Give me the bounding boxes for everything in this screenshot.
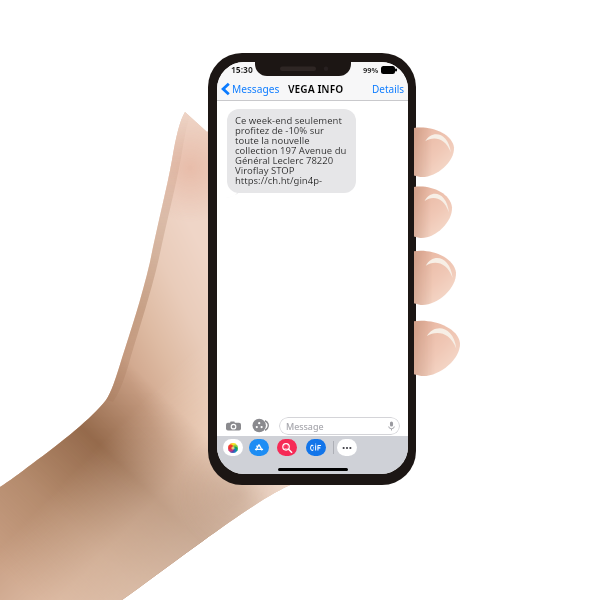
button[interactable]: Take photo	[225, 419, 241, 433]
staticText: 15:30	[231, 64, 253, 76]
button[interactable]: Messages	[217, 82, 282, 96]
staticText: 99%	[363, 65, 379, 75]
button[interactable]: iMessage apps	[252, 419, 268, 432]
staticText: Message	[286, 420, 324, 432]
button[interactable]: App Store	[249, 439, 269, 456]
button[interactable]: Message	[279, 417, 400, 435]
staticText: Ce week-end seulement profitez de -10% s…	[235, 114, 347, 187]
button[interactable]: Details	[372, 82, 408, 96]
button[interactable]: Photos	[223, 439, 243, 456]
staticText: Details	[372, 82, 405, 96]
button[interactable]: More	[337, 439, 357, 456]
button[interactable]: GIF	[306, 439, 326, 456]
staticText: VEGA INFO	[288, 82, 344, 96]
button[interactable]: Image search	[277, 439, 297, 456]
button[interactable]: Ce week-end seulement profitez de -10% s…	[227, 109, 356, 193]
staticText: Messages	[232, 82, 280, 96]
